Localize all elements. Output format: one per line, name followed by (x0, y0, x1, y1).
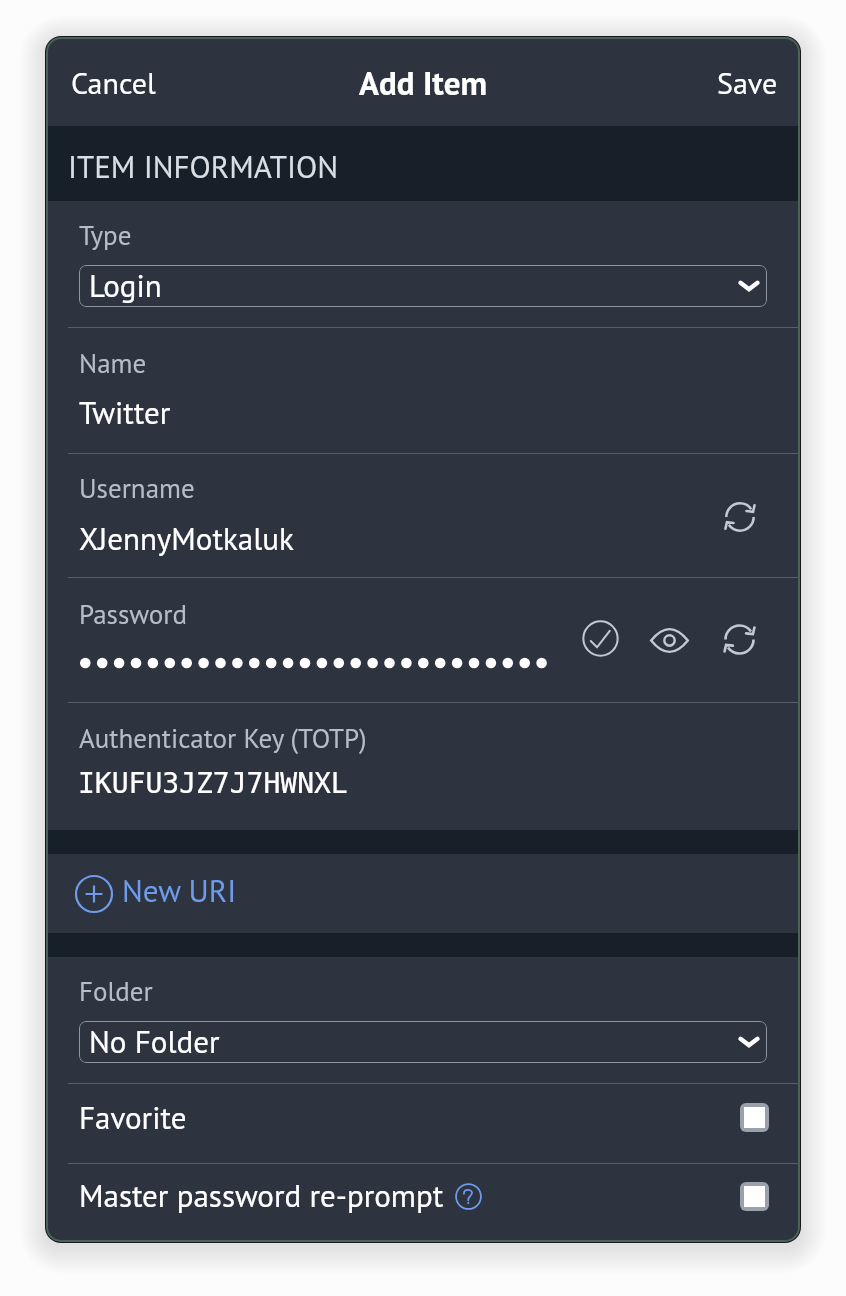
button[interactable]: Save (694, 45, 798, 120)
staticText: Login (89, 265, 162, 305)
button[interactable]: Favorite (48, 1084, 798, 1163)
button[interactable]: New URI (48, 854, 798, 933)
staticText: Folder (79, 974, 153, 1009)
staticText: Add Item (359, 61, 487, 104)
staticText: Name (79, 346, 147, 381)
button[interactable]: Master password re-prompt (48, 1164, 798, 1240)
staticText: Username (79, 471, 195, 506)
button[interactable]: Type (48, 201, 798, 327)
button[interactable]: Generate password (720, 620, 759, 659)
staticText: ITEM INFORMATION (68, 146, 339, 186)
button[interactable]: Authenticator Key (TOTP) (48, 703, 798, 830)
staticText: Cancel (71, 63, 156, 102)
staticText: Type (79, 218, 132, 253)
button[interactable]: Folder (48, 957, 798, 1083)
staticText: No Folder (89, 1021, 220, 1061)
button[interactable]: Check password for breaches (581, 619, 620, 658)
staticText: Master password re-prompt (79, 1175, 444, 1215)
button[interactable]: Generate username (720, 497, 759, 536)
staticText: New URI (122, 870, 237, 910)
staticText: IKUFU3JZ7J7HWNXL (78, 767, 348, 800)
button[interactable]: Cancel (48, 45, 179, 120)
staticText: Favorite (79, 1097, 187, 1137)
button[interactable]: Name (48, 328, 798, 453)
staticText: Password (79, 597, 187, 632)
staticText: Save (717, 63, 778, 102)
staticText: XJennyMotkaluk (79, 518, 294, 558)
staticText: Authenticator Key (TOTP) (79, 721, 367, 756)
staticText: Twitter (79, 392, 171, 432)
button[interactable]: Toggle password visibility (650, 621, 689, 660)
